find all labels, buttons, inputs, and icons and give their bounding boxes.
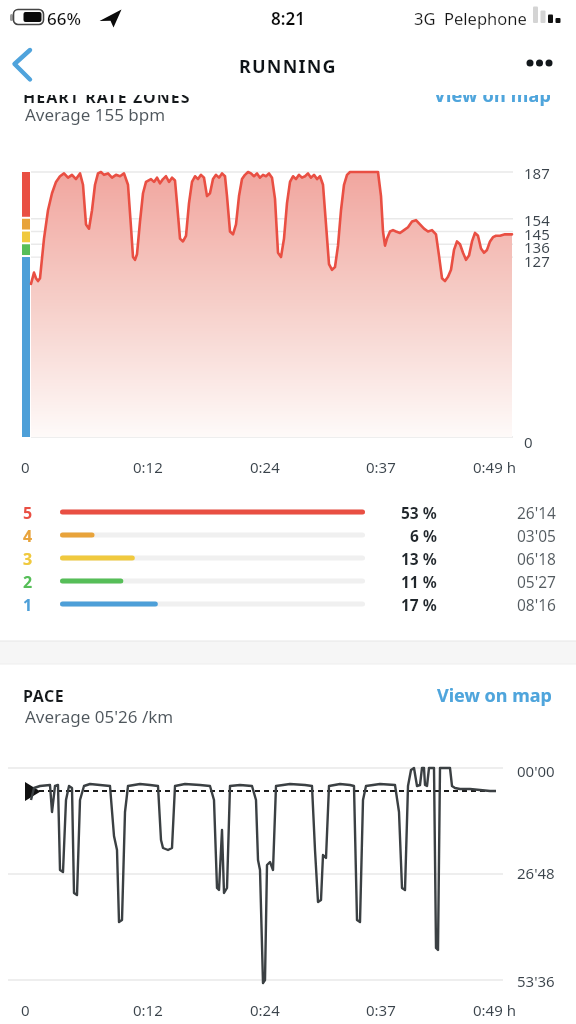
staticText: 0	[21, 457, 30, 477]
staticText: 187	[524, 163, 550, 183]
staticText: Average 155 bpm	[25, 103, 166, 126]
staticText: 0:24	[250, 457, 280, 477]
staticText: 127	[524, 251, 550, 271]
staticText: 1	[23, 594, 33, 616]
button[interactable]	[6, 44, 38, 84]
staticText: 0:37	[366, 457, 396, 477]
staticText: 0:37	[366, 1000, 396, 1020]
staticText: 0	[524, 432, 533, 452]
staticText: HEART RATE ZONES	[23, 86, 191, 108]
staticText: 6 %	[410, 525, 437, 546]
staticText: RUNNING	[239, 54, 337, 79]
staticText: 66%	[47, 7, 81, 30]
staticText: 26'48	[517, 863, 555, 883]
staticText: 3G Pelephone	[414, 7, 527, 29]
staticText: 08'16	[517, 594, 556, 615]
staticText: 154	[524, 210, 550, 230]
staticText: Average 05'26 /km	[25, 705, 174, 728]
button[interactable]: View on map	[392, 83, 552, 107]
staticText: 4	[23, 525, 33, 547]
staticText: PACE	[23, 685, 65, 707]
staticText: 3	[23, 548, 33, 570]
staticText: 13 %	[401, 548, 437, 569]
button[interactable]: View on map	[392, 683, 552, 709]
staticText: 05'27	[517, 571, 556, 592]
staticText: 06'18	[517, 548, 556, 569]
staticText: 0:49 h	[473, 1000, 516, 1020]
staticText: 0:12	[133, 457, 163, 477]
staticText: 136	[524, 237, 550, 257]
staticText: View on map	[434, 83, 552, 107]
button[interactable]	[518, 50, 562, 78]
staticText: 5	[23, 502, 33, 524]
staticText: 145	[524, 224, 550, 244]
staticText: 00'00	[517, 761, 555, 781]
staticText: 17 %	[401, 594, 437, 615]
staticText: 0:24	[250, 1000, 280, 1020]
staticText: 26'14	[517, 502, 556, 523]
staticText: 11 %	[401, 571, 437, 592]
staticText: 8:21	[271, 7, 305, 30]
staticText: 0:49 h	[473, 457, 516, 477]
staticText: 53 %	[401, 502, 437, 523]
staticText: 0	[21, 1000, 30, 1020]
staticText: 0:12	[133, 1000, 163, 1020]
staticText: 53'36	[517, 971, 555, 991]
staticText: 03'05	[517, 525, 556, 546]
staticText: View on map	[437, 683, 552, 708]
staticText: 2	[23, 571, 33, 593]
